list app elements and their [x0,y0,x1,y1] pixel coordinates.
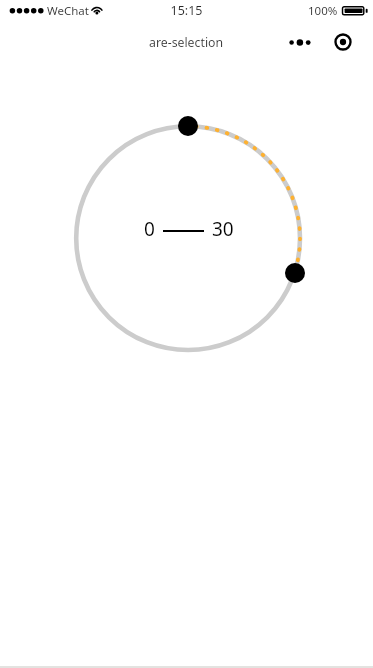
staticText: WeChat [47,3,89,19]
staticText: 100% [308,3,338,19]
button[interactable]: Range end handle, 30 [285,263,305,283]
staticText: 0 [144,216,155,242]
staticText: 30 [212,216,234,242]
staticText: are-selection [149,34,224,51]
staticText: 15:15 [0,2,373,19]
button[interactable]: Close [331,30,355,54]
button[interactable]: Range start handle, 0 [178,116,198,136]
button[interactable]: More options [284,30,316,54]
